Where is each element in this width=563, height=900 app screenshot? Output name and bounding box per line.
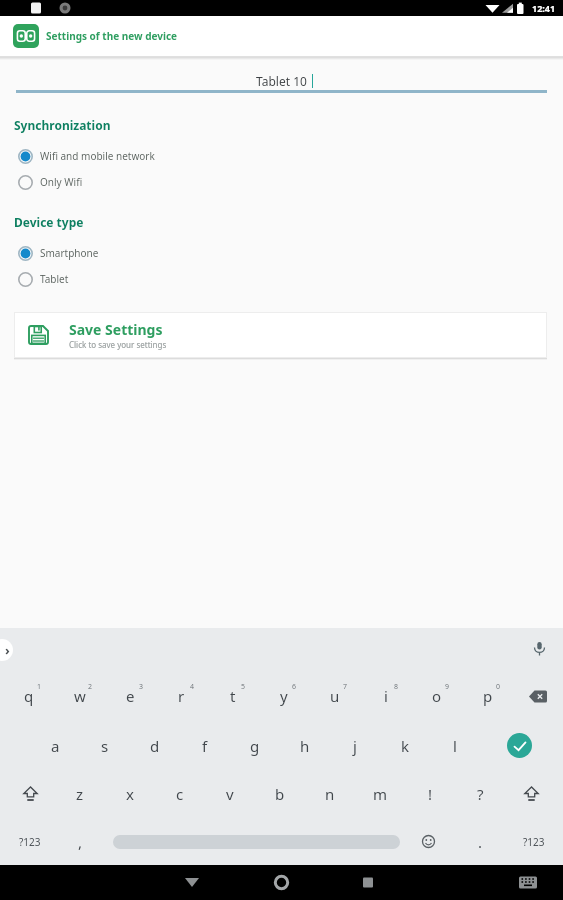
button[interactable]: e <box>105 671 156 721</box>
staticText: Click to save your settings <box>69 339 167 350</box>
staticText: 2 <box>88 682 93 692</box>
button[interactable]: q <box>3 671 54 721</box>
button[interactable]: p <box>462 671 513 721</box>
staticText: o <box>432 686 442 706</box>
button[interactable]: u <box>309 671 360 721</box>
staticText: c <box>176 784 184 804</box>
staticText: p <box>483 686 493 706</box>
staticText: m <box>373 784 388 804</box>
staticText: s <box>101 736 109 756</box>
staticText: Settings of the new device <box>46 29 178 43</box>
button[interactable] <box>187 865 375 900</box>
button[interactable] <box>513 671 563 721</box>
staticText: a <box>51 736 60 756</box>
button[interactable]: i <box>360 671 411 721</box>
button[interactable]: m <box>355 770 405 818</box>
button[interactable]: t <box>207 671 258 721</box>
staticText: b <box>275 784 285 804</box>
button[interactable]: g <box>230 721 280 770</box>
staticText: 3 <box>139 682 144 692</box>
button[interactable] <box>375 865 563 900</box>
staticText: 9 <box>445 682 450 692</box>
staticText: , <box>78 832 83 852</box>
staticText: v <box>226 784 234 804</box>
button[interactable]: a <box>30 721 80 770</box>
staticText: . <box>478 832 483 852</box>
button[interactable]: Wifi and mobile network <box>0 143 563 169</box>
button[interactable]: v <box>205 770 255 818</box>
button[interactable]: , <box>55 818 105 865</box>
button[interactable] <box>507 733 532 758</box>
button[interactable]: w <box>54 671 105 721</box>
button[interactable]: Save Settings <box>14 312 547 358</box>
staticText: y <box>280 686 288 706</box>
staticText: ? <box>477 784 484 804</box>
staticText: 7 <box>343 682 348 692</box>
staticText: Tablet <box>40 272 69 286</box>
staticText: f <box>202 736 208 756</box>
button[interactable]: Only Wifi <box>0 169 563 195</box>
button[interactable]: ?123 <box>5 818 55 865</box>
staticText: Only Wifi <box>40 175 83 189</box>
staticText: u <box>330 686 340 706</box>
button[interactable]: Tablet <box>0 266 563 292</box>
staticText: Wifi and mobile network <box>40 149 155 163</box>
staticText: n <box>325 784 335 804</box>
button[interactable]: f <box>180 721 230 770</box>
staticText: q <box>24 686 34 706</box>
staticText: g <box>250 736 260 756</box>
staticText: h <box>300 736 310 756</box>
staticText: w <box>74 686 86 706</box>
button[interactable]: c <box>155 770 205 818</box>
button[interactable]: ?123 <box>504 818 563 865</box>
staticText: ?123 <box>523 835 545 849</box>
staticText: l <box>453 736 457 756</box>
staticText: x <box>126 784 134 804</box>
button[interactable]: j <box>330 721 380 770</box>
button[interactable]: › <box>0 639 13 661</box>
button[interactable]: n <box>305 770 355 818</box>
staticText: j <box>353 736 357 756</box>
button[interactable]: o <box>411 671 462 721</box>
button[interactable]: r <box>156 671 207 721</box>
staticText: 0 <box>496 682 501 692</box>
staticText: t <box>230 686 236 706</box>
button[interactable] <box>400 818 456 865</box>
staticText: 12:41 <box>532 2 556 14</box>
button[interactable]: z <box>55 770 105 818</box>
staticText: Save Settings <box>69 320 163 339</box>
button[interactable]: y <box>258 671 309 721</box>
staticText: Synchronization <box>14 117 111 133</box>
button[interactable]: . <box>456 818 504 865</box>
staticText: Tablet 10 <box>256 73 307 89</box>
staticText: e <box>126 686 135 706</box>
button[interactable]: d <box>130 721 180 770</box>
button[interactable]: ! <box>405 770 455 818</box>
button[interactable] <box>505 770 558 818</box>
staticText: z <box>76 784 84 804</box>
staticText: 5 <box>241 682 246 692</box>
staticText: ! <box>428 784 433 804</box>
button[interactable]: k <box>380 721 430 770</box>
button[interactable]: Smartphone <box>0 240 563 266</box>
button[interactable]: s <box>80 721 130 770</box>
button[interactable]: l <box>430 721 480 770</box>
staticText: d <box>150 736 160 756</box>
staticText: 1 <box>37 682 42 692</box>
button[interactable]: x <box>105 770 155 818</box>
staticText: 8 <box>394 682 399 692</box>
staticText: › <box>5 641 10 659</box>
button[interactable]: b <box>255 770 305 818</box>
button[interactable]: ? <box>455 770 505 818</box>
button[interactable] <box>5 770 55 818</box>
staticText: 4 <box>190 682 195 692</box>
button[interactable]: h <box>280 721 330 770</box>
staticText: i <box>384 686 388 706</box>
staticText: Device type <box>14 214 84 230</box>
staticText: 6 <box>292 682 297 692</box>
staticText: Smartphone <box>40 246 99 260</box>
staticText: ?123 <box>19 835 41 849</box>
staticText: k <box>401 736 410 756</box>
